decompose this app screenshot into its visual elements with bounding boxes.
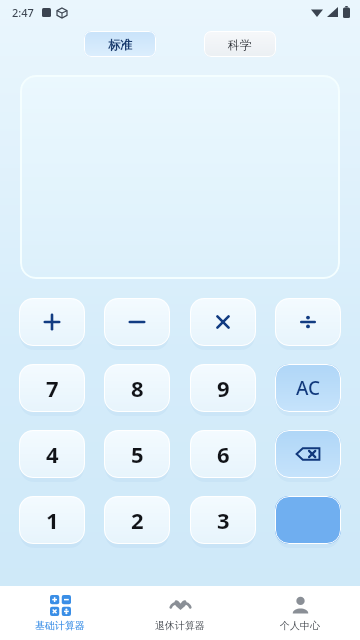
button[interactable]: Minus: [104, 298, 170, 350]
other: Plus: [42, 312, 62, 332]
other: Divide: [298, 312, 318, 332]
staticText: 个人中心: [280, 619, 320, 632]
staticText: 2:47: [12, 5, 34, 20]
button[interactable]: 个人中心: [240, 586, 360, 640]
staticText: 5: [131, 439, 144, 469]
button[interactable]: AC: [275, 364, 341, 416]
other: Multiply: [213, 312, 233, 332]
button[interactable]: 5: [104, 430, 170, 482]
button[interactable]: 标准: [84, 31, 156, 57]
button[interactable]: Plus: [19, 298, 85, 350]
button[interactable]: 2: [104, 496, 170, 548]
staticText: 9: [217, 373, 230, 403]
button[interactable]: 科学: [204, 31, 276, 57]
button[interactable]: 1: [19, 496, 85, 548]
button[interactable]: 基础计算器: [0, 586, 120, 640]
button[interactable]: 9: [190, 364, 256, 416]
staticText: 1: [46, 505, 59, 535]
button[interactable]: 退休计算器: [120, 586, 240, 640]
staticText: 退休计算器: [155, 619, 205, 632]
staticText: 3: [217, 505, 230, 535]
button[interactable]: 6: [190, 430, 256, 482]
button[interactable]: 7: [19, 364, 85, 416]
staticText: 8: [131, 373, 144, 403]
button[interactable]: Multiply: [190, 298, 256, 350]
staticText: AC: [296, 375, 321, 401]
button[interactable]: Divide: [275, 298, 341, 350]
button[interactable]: Backspace: [275, 430, 341, 482]
staticText: 2: [131, 505, 144, 535]
staticText: 4: [46, 439, 59, 469]
button[interactable]: 8: [104, 364, 170, 416]
staticText: 科学: [228, 37, 252, 52]
button[interactable]: 3: [190, 496, 256, 548]
staticText: 7: [46, 373, 59, 403]
button[interactable]: Equals: [275, 496, 341, 548]
staticText: 6: [217, 439, 230, 469]
button[interactable]: 4: [19, 430, 85, 482]
other: Minus: [127, 312, 147, 332]
staticText: 基础计算器: [35, 619, 85, 632]
staticText: 标准: [108, 37, 132, 52]
